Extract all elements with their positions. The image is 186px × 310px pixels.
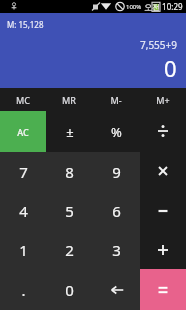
button[interactable]: 6 [93, 191, 140, 230]
staticText: AC [17, 126, 29, 138]
button[interactable]: Divide [140, 111, 186, 151]
staticText: M+ [156, 94, 170, 106]
staticText: ± [66, 123, 74, 141]
staticText: 2 [65, 240, 74, 260]
staticText: . [21, 280, 26, 300]
staticText: 7,555+9 [140, 38, 177, 52]
button[interactable]: AC [0, 111, 46, 152]
button[interactable]: Equals [140, 269, 186, 310]
button[interactable]: 2 [46, 230, 93, 270]
staticText: 0 [65, 280, 74, 300]
staticText: 5 [65, 201, 74, 221]
button[interactable]: 0 [46, 270, 93, 310]
button[interactable]: M- [92, 88, 139, 111]
staticText: 7 [19, 162, 28, 182]
staticText: 9 [112, 162, 121, 182]
staticText: 4 [19, 201, 28, 221]
button[interactable]: Plus [140, 230, 186, 269]
button[interactable]: M+ [139, 88, 186, 111]
staticText: MC [16, 94, 30, 106]
button[interactable]: 7 [0, 152, 46, 191]
staticText: M- [110, 94, 122, 106]
staticText: 6 [112, 201, 121, 221]
button[interactable]: 5 [46, 191, 93, 230]
button[interactable]: Plus minus [46, 111, 93, 152]
button[interactable]: 4 [0, 191, 46, 230]
button[interactable]: 1 [0, 230, 46, 270]
button[interactable]: 9 [93, 152, 140, 191]
button[interactable]: 3 [93, 230, 140, 270]
staticText: % [111, 123, 122, 141]
staticText: 8 [65, 162, 74, 182]
button[interactable]: % [93, 111, 140, 152]
button[interactable]: Backspace [93, 270, 140, 310]
staticText: 0 [164, 53, 177, 83]
staticText: 3 [112, 240, 121, 260]
button[interactable]: . [0, 270, 46, 310]
staticText: 오전 10:29 [144, 1, 183, 12]
button[interactable]: 8 [46, 152, 93, 191]
staticText: 100% [126, 3, 142, 11]
staticText: M: 15,128 [7, 19, 44, 30]
button[interactable]: MC [0, 88, 46, 111]
button[interactable]: Minus [140, 191, 186, 230]
button[interactable]: Multiply [140, 151, 186, 191]
button[interactable]: MR [46, 88, 92, 111]
staticText: 1 [19, 240, 28, 260]
staticText: MR [62, 94, 76, 106]
